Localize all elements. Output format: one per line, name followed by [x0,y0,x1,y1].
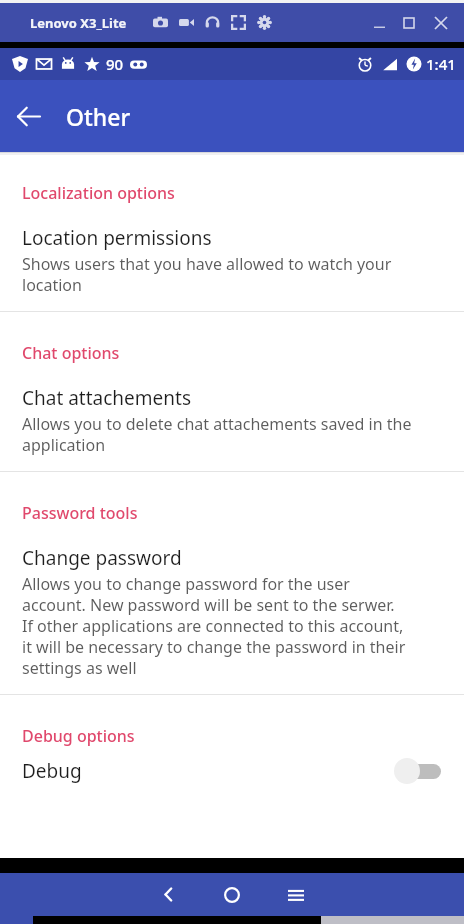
staticText: Debug [22,758,82,784]
staticText: Debug options [22,725,135,747]
button[interactable]: Location permissions [0,204,464,311]
button[interactable]: Home [209,873,255,916]
staticText: Password tools [22,502,138,524]
staticText: Allows you to change password for the us… [22,573,406,679]
button[interactable]: Change password [0,524,464,694]
button[interactable]: Back [145,873,191,916]
staticText: Lenovo X3_Lite [30,14,127,32]
staticText: 1:41 [426,54,456,74]
staticText: Allows you to delete chat attachements s… [22,413,412,456]
button[interactable]: Record screen [179,15,194,30]
button[interactable]: Screenshot [153,15,168,30]
button[interactable]: Maximize [394,8,424,38]
button[interactable]: Audio [205,15,220,30]
button[interactable]: Debug [0,747,464,795]
staticText: Shows users that you have allowed to wat… [22,253,392,296]
staticText: Chat options [22,342,120,364]
staticText: Chat attachements [22,385,192,411]
staticText: Location permissions [22,225,212,251]
staticText: Localization options [22,182,175,204]
staticText: 90 [106,54,124,74]
button[interactable]: Chat attachements [0,364,464,471]
button[interactable]: Recent apps [273,873,319,916]
staticText: Change password [22,545,182,571]
button[interactable]: Close [424,8,458,38]
button[interactable]: Settings [257,15,272,30]
staticText: Other [66,101,131,132]
button[interactable]: Fullscreen [231,15,246,30]
button[interactable]: Minimize [364,8,394,38]
button[interactable]: Back [0,88,56,144]
